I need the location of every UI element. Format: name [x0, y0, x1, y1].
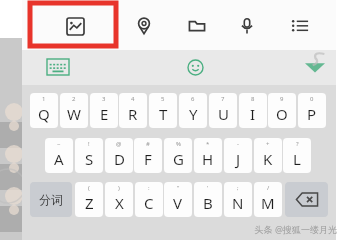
staticText: E	[100, 104, 109, 124]
staticText: 分词	[39, 192, 63, 207]
staticText: 0	[310, 95, 314, 103]
button[interactable]: Backspace	[285, 182, 328, 217]
staticText: U	[218, 104, 229, 124]
button[interactable]: 8	[239, 93, 267, 128]
button[interactable]: /	[254, 182, 282, 217]
staticText: X	[115, 193, 124, 213]
staticText: Z	[85, 193, 94, 213]
staticText: D	[114, 149, 125, 169]
staticText: Y	[189, 104, 198, 124]
staticText: !	[88, 140, 90, 148]
button[interactable]: Voice input	[234, 13, 260, 39]
staticText: I	[250, 104, 256, 124]
button[interactable]: 0	[298, 93, 326, 128]
button[interactable]: Location	[131, 13, 157, 39]
button[interactable]: List	[287, 13, 313, 39]
button[interactable]: Emoji	[184, 56, 206, 78]
button[interactable]: 1	[30, 93, 58, 128]
button[interactable]: Folder	[184, 13, 210, 39]
button[interactable]: ;	[224, 182, 252, 217]
button[interactable]: 9	[268, 93, 296, 128]
button[interactable]: ?	[283, 138, 311, 173]
staticText: ~	[57, 140, 61, 148]
staticText: 头条 @搜狐一缕月光	[197, 223, 337, 235]
staticText: B	[203, 193, 213, 213]
staticText: %	[176, 140, 181, 148]
button[interactable]: 5	[149, 93, 177, 128]
staticText: N	[232, 193, 244, 213]
staticText: T	[159, 104, 168, 124]
staticText: S	[85, 149, 94, 169]
staticText: F	[144, 149, 152, 169]
button[interactable]: Image	[62, 13, 88, 39]
staticText: 9	[280, 95, 284, 103]
staticText: 5	[161, 95, 165, 103]
button[interactable]: @	[105, 138, 133, 173]
staticText: P	[307, 104, 317, 124]
staticText: 8	[251, 95, 255, 103]
staticText: 2	[72, 95, 76, 103]
staticText: *	[206, 140, 210, 148]
button[interactable]: +	[254, 138, 282, 173]
button[interactable]: 3	[90, 93, 118, 128]
staticText: 3	[102, 95, 106, 103]
button[interactable]: -	[224, 138, 252, 173]
button[interactable]: "	[164, 182, 192, 217]
staticText: ?	[296, 140, 299, 148]
button[interactable]: 6	[179, 93, 207, 128]
staticText: :	[148, 184, 150, 192]
button[interactable]: 2	[60, 93, 88, 128]
staticText: 4	[131, 95, 135, 103]
staticText: L	[293, 149, 301, 169]
button[interactable]: )	[105, 182, 133, 217]
button[interactable]: 7	[209, 93, 237, 128]
staticText: 7	[221, 95, 225, 103]
staticText: H	[202, 149, 214, 169]
staticText: ;	[237, 184, 239, 192]
staticText: #	[146, 140, 150, 148]
staticText: 1	[42, 95, 46, 103]
staticText: A	[54, 149, 64, 169]
staticText: C	[144, 193, 154, 213]
button[interactable]: Keyboard	[45, 57, 71, 77]
staticText: (	[88, 184, 90, 192]
button[interactable]: ~	[45, 138, 73, 173]
staticText: )	[118, 184, 120, 192]
staticText: G	[173, 149, 184, 169]
button[interactable]: !	[75, 138, 103, 173]
staticText: Q	[38, 104, 50, 124]
button[interactable]: 4	[119, 93, 147, 128]
staticText: '	[207, 184, 209, 192]
staticText: O	[276, 104, 288, 124]
staticText: V	[173, 193, 183, 213]
staticText: -	[237, 140, 239, 148]
button[interactable]: '	[194, 182, 222, 217]
staticText: J	[236, 149, 241, 169]
staticText: R	[128, 104, 138, 124]
staticText: @	[116, 140, 122, 148]
staticText: 6	[191, 95, 195, 103]
button[interactable]: *	[194, 138, 222, 173]
button[interactable]: (	[75, 182, 103, 217]
button[interactable]: #	[134, 138, 162, 173]
button[interactable]: Hide keyboard	[302, 57, 328, 77]
staticText: W	[67, 104, 81, 124]
staticText: "	[177, 184, 180, 192]
staticText: /	[267, 184, 270, 192]
button[interactable]: Word segmentation	[30, 182, 72, 217]
staticText: K	[263, 149, 273, 169]
staticText: M	[261, 193, 275, 213]
button[interactable]: %	[164, 138, 192, 173]
button[interactable]: :	[135, 182, 163, 217]
staticText: +	[266, 140, 270, 148]
